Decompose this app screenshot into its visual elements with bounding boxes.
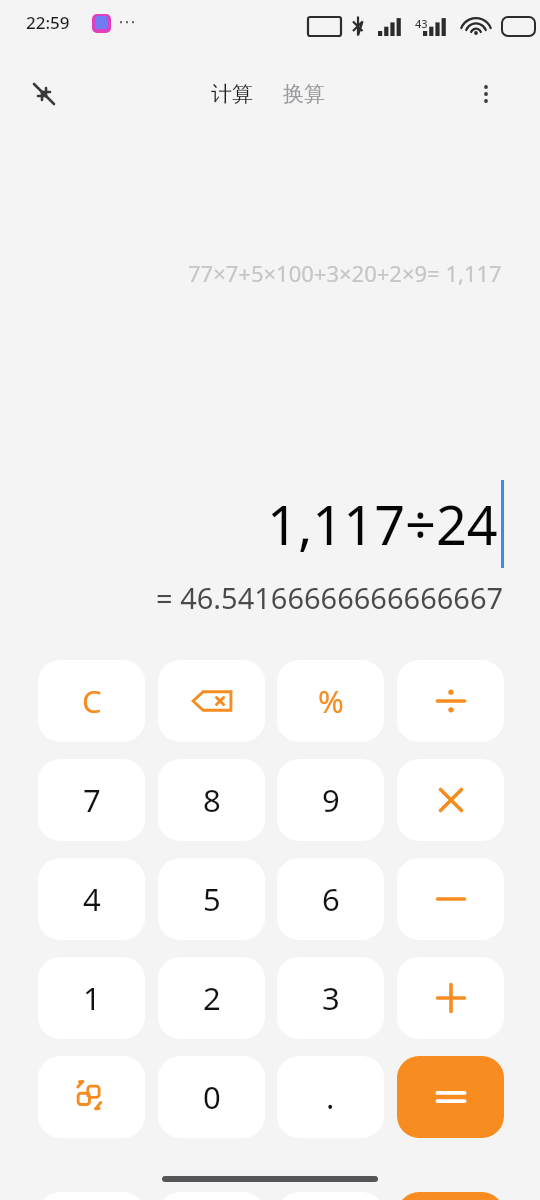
staticText: ⋯ [118, 11, 136, 32]
button[interactable] [397, 1192, 504, 1200]
button[interactable]: 4 [38, 858, 145, 940]
staticText: 2 [203, 977, 221, 1019]
staticText: 1,117÷24 [267, 487, 498, 561]
staticText: 5 [203, 878, 221, 920]
staticText: 计算 [211, 81, 253, 107]
button[interactable] [397, 957, 504, 1039]
staticText: 4 [83, 878, 101, 920]
staticText: 6 [322, 878, 340, 920]
button[interactable]: 8 [158, 759, 265, 841]
button[interactable]: % [277, 660, 384, 742]
button[interactable]: C [38, 660, 145, 742]
staticText: 0 [203, 1076, 221, 1118]
button[interactable]: 换算 [276, 75, 332, 113]
staticText: 43 [415, 16, 428, 31]
button[interactable]: 3 [277, 957, 384, 1039]
button[interactable] [277, 1192, 384, 1200]
staticText: 换算 [283, 81, 325, 107]
staticText: 9 [322, 779, 340, 821]
button[interactable]: 1 [38, 957, 145, 1039]
button[interactable]: 0 [158, 1056, 265, 1138]
button[interactable]: 计算 [204, 75, 260, 113]
staticText: 22:59 [26, 11, 70, 34]
button[interactable] [158, 1192, 265, 1200]
button[interactable]: Delete [158, 660, 265, 742]
button[interactable] [38, 1192, 145, 1200]
button[interactable]: 5 [158, 858, 265, 940]
staticText: % [318, 680, 344, 722]
staticText: 7 [83, 779, 101, 821]
staticText: 3 [322, 977, 340, 1019]
button[interactable]: 7 [38, 759, 145, 841]
button[interactable]: 77×7+5×100+3×20+2×9= 1,117 [0, 258, 502, 288]
button[interactable]: 2 [158, 957, 265, 1039]
staticText: 77×7+5×100+3×20+2×9= 1,117 [188, 258, 502, 288]
button[interactable]: Equals [397, 1056, 504, 1138]
button[interactable]: More options [464, 72, 508, 116]
staticText: 8 [203, 779, 221, 821]
button[interactable]: . [277, 1056, 384, 1138]
button[interactable] [397, 858, 504, 940]
button[interactable]: Collapse [22, 72, 66, 116]
staticText: C [82, 680, 102, 722]
staticText: 1 [83, 977, 101, 1019]
button[interactable]: Unit convert [38, 1056, 145, 1138]
button[interactable] [397, 759, 504, 841]
staticText: = 46.54166666666666667 [156, 578, 504, 617]
staticText: . [326, 1076, 335, 1118]
button[interactable]: Divide [397, 660, 504, 742]
button[interactable]: 9 [277, 759, 384, 841]
button[interactable]: 6 [277, 858, 384, 940]
